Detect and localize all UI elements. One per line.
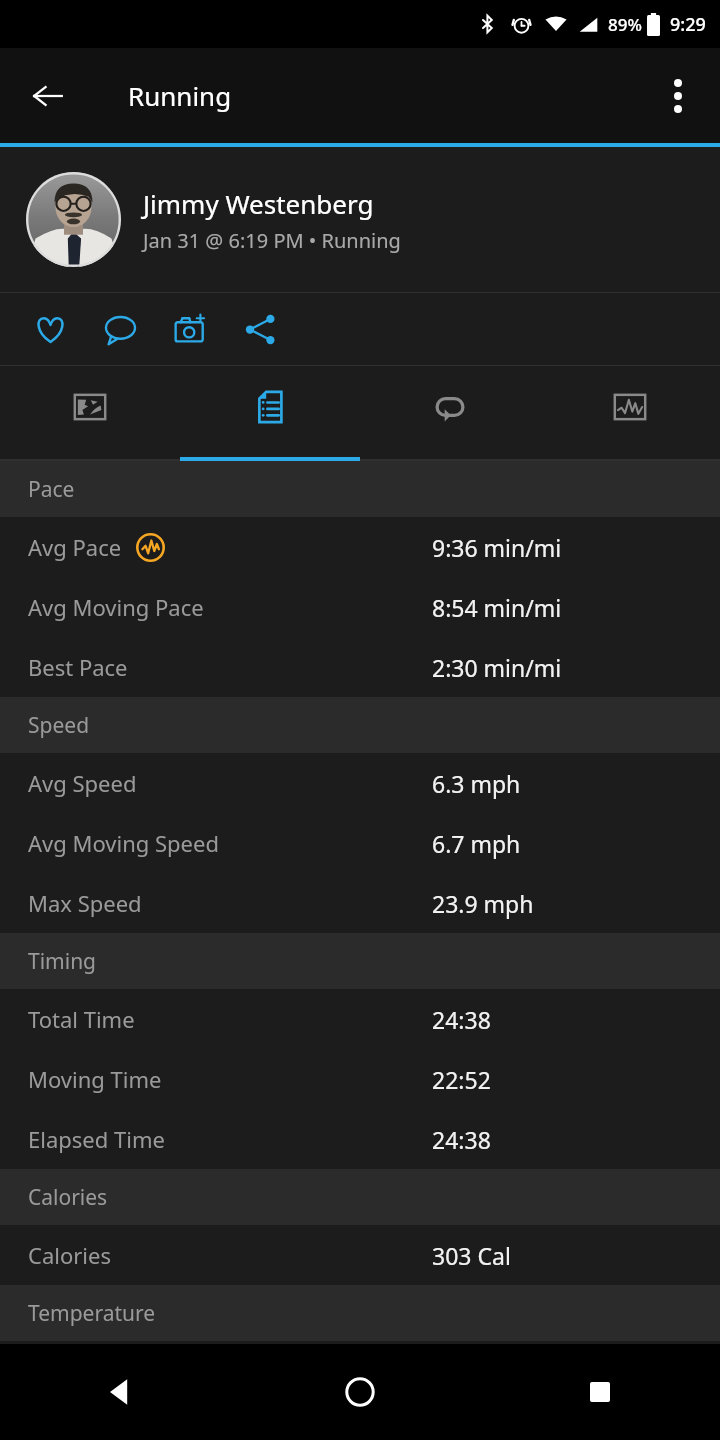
button[interactable]: Best Pace <box>0 637 720 697</box>
button[interactable]: Back <box>18 66 78 126</box>
staticText: Pace <box>28 475 75 504</box>
staticText: Avg Speed <box>28 768 137 798</box>
staticText: Jimmy Westenberg <box>143 186 374 221</box>
button[interactable]: Avg Pace <box>0 517 720 577</box>
staticText: 89% <box>608 13 642 36</box>
staticText: Total Time <box>28 1004 135 1034</box>
button[interactable]: Total Time <box>0 989 720 1049</box>
button[interactable]: Graphs <box>540 366 720 461</box>
button[interactable]: Moving Time <box>0 1049 720 1109</box>
staticText: Avg Pace <box>28 532 122 562</box>
staticText: 24:38 <box>432 1124 491 1155</box>
button[interactable]: Home <box>240 1344 480 1440</box>
staticText: Moving Time <box>28 1064 162 1094</box>
staticText: Calories <box>28 1240 111 1270</box>
staticText: 303 Cal <box>432 1240 511 1271</box>
button[interactable]: Laps <box>360 366 540 461</box>
button[interactable]: Avg Speed <box>0 753 720 813</box>
staticText: 22:52 <box>432 1064 491 1095</box>
staticText: Speed <box>28 711 90 740</box>
staticText: Best Pace <box>28 652 128 682</box>
button[interactable]: Elapsed Time <box>0 1109 720 1169</box>
staticText: Timing <box>28 947 97 976</box>
button[interactable]: More options <box>648 66 708 126</box>
staticText: Calories <box>28 1183 108 1212</box>
staticText: Jan 31 @ 6:19 PM • Running <box>143 227 401 254</box>
staticText: 24:38 <box>432 1004 491 1035</box>
staticText: 8:54 min/mi <box>432 592 562 623</box>
button[interactable]: Back <box>0 1344 240 1440</box>
button[interactable]: Recents <box>480 1344 720 1440</box>
button[interactable]: Avg Moving Speed <box>0 813 720 873</box>
button[interactable]: Comment <box>96 305 144 353</box>
staticText: Avg Moving Speed <box>28 828 219 858</box>
button[interactable]: Avg Moving Pace <box>0 577 720 637</box>
staticText: 23.9 mph <box>432 888 534 919</box>
staticText: Elapsed Time <box>28 1124 165 1154</box>
button[interactable]: Add photo <box>166 305 214 353</box>
staticText: Running <box>128 78 232 113</box>
staticText: 6.3 mph <box>432 768 521 799</box>
button[interactable]: Like <box>26 305 74 353</box>
button[interactable]: Max Speed <box>0 873 720 933</box>
staticText: Max Speed <box>28 888 142 918</box>
button[interactable]: Calories <box>0 1225 720 1285</box>
staticText: 6.7 mph <box>432 828 521 859</box>
button[interactable]: Jimmy Westenberg <box>0 147 720 292</box>
button[interactable]: Details <box>180 366 360 461</box>
staticText: 9:29 <box>670 12 706 37</box>
staticText: 2:30 min/mi <box>432 652 562 683</box>
staticText: Temperature <box>28 1299 156 1328</box>
staticText: 9:36 min/mi <box>432 532 562 563</box>
staticText: Avg Moving Pace <box>28 592 204 622</box>
button[interactable]: Share <box>236 305 284 353</box>
button[interactable]: Map <box>0 366 180 461</box>
